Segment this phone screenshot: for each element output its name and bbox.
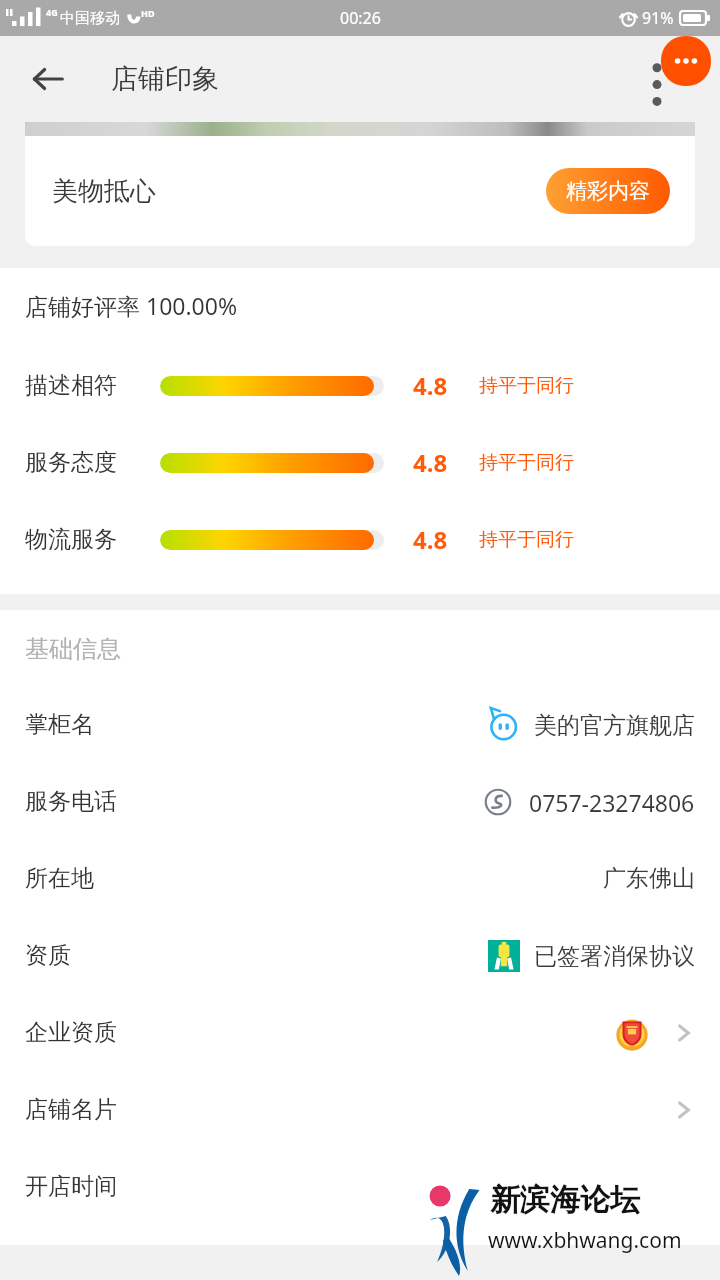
staticText: 精彩内容 (566, 178, 650, 204)
button[interactable]: 服务电话 (0, 763, 720, 840)
staticText: 美物抵心 (52, 175, 156, 208)
staticText: 持平于同行 (479, 374, 574, 398)
button[interactable]: Back (20, 51, 76, 107)
staticText: 店铺好评率 100.00% (25, 290, 238, 321)
staticText: 0757-23274806 (529, 787, 695, 818)
staticText: 物流服务 (25, 525, 117, 554)
staticText: 4.8 (413, 523, 448, 556)
button[interactable]: 所在地 (0, 840, 720, 917)
staticText: 服务态度 (25, 448, 117, 477)
staticText: 所在地 (25, 864, 94, 893)
staticText: 店铺名片 (25, 1095, 117, 1124)
staticText: 广东佛山 (603, 864, 695, 893)
staticText: 描述相符 (25, 371, 117, 400)
staticText: 持平于同行 (479, 528, 574, 552)
staticText: 中国移动 (60, 9, 120, 28)
staticText: 00:26 (340, 7, 381, 29)
staticText: 持平于同行 (479, 451, 574, 475)
staticText: 4G (46, 6, 58, 18)
staticText: 美的官方旗舰店 (534, 711, 695, 740)
staticText: 基础信息 (25, 634, 121, 664)
staticText: 掌柜名 (25, 710, 94, 739)
button[interactable]: 美物抵心 (25, 136, 695, 246)
button[interactable]: 资质 (0, 917, 720, 994)
button[interactable]: 物流服务 (0, 501, 720, 578)
staticText: 已签署消保协议 (534, 942, 695, 971)
staticText: 新滨海论坛 (490, 1181, 640, 1219)
button[interactable]: 服务态度 (0, 424, 720, 501)
staticText: 店铺印象 (111, 62, 219, 96)
staticText: 资质 (25, 941, 71, 970)
staticText: 4.8 (413, 446, 448, 479)
staticText: www.xbhwang.com (488, 1226, 682, 1255)
button[interactable]: 店铺名片 (0, 1071, 720, 1148)
button[interactable]: 描述相符 (0, 347, 720, 424)
staticText: HD (141, 7, 155, 19)
button[interactable]: More options (634, 44, 680, 114)
button[interactable]: 企业资质 (0, 994, 720, 1071)
staticText: 企业资质 (25, 1018, 117, 1047)
staticText: 91% (642, 7, 674, 29)
staticText: 服务电话 (25, 787, 117, 816)
button[interactable]: More (661, 36, 711, 86)
button[interactable]: 精彩内容 (546, 168, 670, 214)
staticText: 4.8 (413, 369, 448, 402)
button[interactable]: 开店时间 (0, 1148, 720, 1225)
staticText: 开店时间 (25, 1172, 117, 1201)
button[interactable]: 掌柜名 (0, 686, 720, 763)
